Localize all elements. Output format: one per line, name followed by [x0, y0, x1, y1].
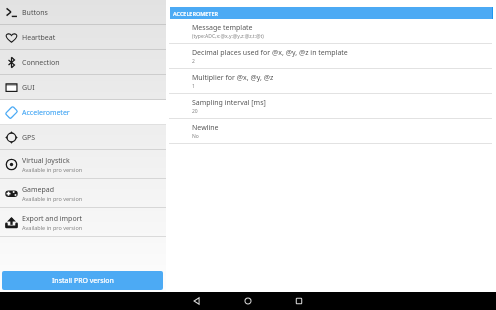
staticText: 2 [192, 58, 195, 65]
button[interactable]: Install PRO version [2, 271, 163, 290]
button[interactable]: Multiplier for @x, @y, @z [166, 69, 496, 94]
staticText: Available in pro version [22, 166, 83, 173]
staticText: Export and import [22, 214, 83, 224]
staticText: No [192, 133, 199, 140]
staticText: (type:ADC,x:@x,y:@y,z:@z,t:@t) [192, 33, 264, 40]
button[interactable]: Accelerometer [0, 100, 166, 125]
staticText: Multiplier for @x, @y, @z [192, 73, 274, 83]
staticText: GPS [22, 133, 36, 143]
button[interactable]: Newline [166, 119, 496, 144]
button[interactable]: Buttons [0, 0, 166, 25]
button[interactable]: Heartbeat [0, 25, 166, 50]
staticText: Gamepad [22, 185, 55, 195]
button[interactable]: Virtual Joystick [0, 150, 166, 179]
staticText: ACCELEROMETER [173, 10, 218, 17]
staticText: Accelerometer [22, 108, 70, 118]
button[interactable]: GUI [0, 75, 166, 100]
button[interactable]: Sampling interval [ms] [166, 94, 496, 119]
staticText: 1 [192, 83, 195, 90]
button[interactable]: Gamepad [0, 179, 166, 208]
staticText: Sampling interval [ms] [192, 98, 266, 108]
button[interactable]: Export and import [0, 208, 166, 237]
staticText: Available in pro version [22, 195, 83, 202]
button[interactable]: Recents [290, 292, 308, 310]
staticText: Available in pro version [22, 224, 83, 231]
staticText: Decimal places used for @x, @y, @z in te… [192, 48, 348, 58]
button[interactable]: Message template [166, 19, 496, 44]
staticText: Message template [192, 23, 253, 33]
staticText: Virtual Joystick [22, 156, 70, 166]
staticText: 20 [192, 108, 198, 115]
staticText: Install PRO version [52, 276, 114, 286]
staticText: Newline [192, 123, 219, 133]
staticText: Connection [22, 58, 60, 68]
staticText: Buttons [22, 8, 48, 18]
button[interactable]: Back [188, 292, 206, 310]
button[interactable]: Home [239, 292, 257, 310]
staticText: GUI [22, 83, 35, 93]
staticText: Heartbeat [22, 33, 56, 43]
button[interactable]: Connection [0, 50, 166, 75]
button[interactable]: Decimal places used for @x, @y, @z in te… [166, 44, 496, 69]
button[interactable]: GPS [0, 125, 166, 150]
